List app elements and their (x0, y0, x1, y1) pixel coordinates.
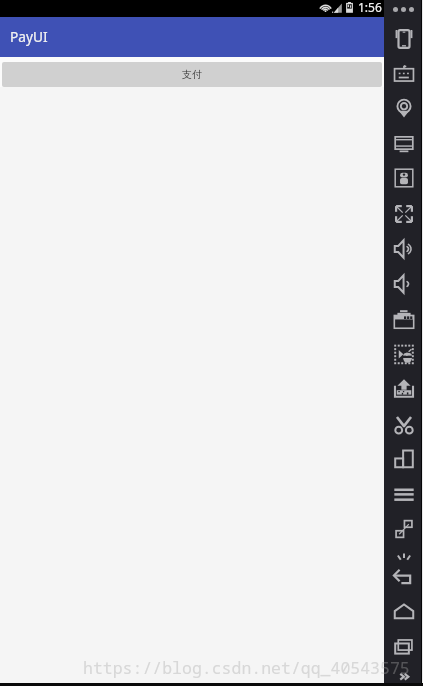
button[interactable]: Location (393, 97, 415, 119)
staticText: 支付 (182, 68, 202, 81)
button[interactable]: Display (393, 132, 415, 154)
staticText: PayUI (10, 27, 48, 46)
button[interactable]: Record (393, 343, 415, 365)
button[interactable]: Keyboard (393, 63, 415, 85)
button[interactable]: Expand panel (398, 671, 412, 682)
button[interactable]: Rotate (393, 28, 415, 50)
button[interactable]: More options (393, 4, 414, 15)
staticText: https://blog.csdn.net/qq_40543575 (83, 656, 410, 678)
button[interactable]: Back (393, 565, 415, 587)
button[interactable]: Recents (393, 636, 415, 658)
button[interactable]: PayUI (0, 17, 384, 57)
button[interactable]: Home (393, 601, 415, 623)
button[interactable]: Fingerprint (393, 167, 415, 189)
button[interactable]: Snapshot (393, 413, 415, 435)
button[interactable]: Power (395, 553, 413, 563)
button[interactable]: Volume up (393, 238, 415, 260)
button[interactable]: Resize (393, 518, 415, 540)
button[interactable]: 支付 (2, 62, 382, 87)
button[interactable]: Menu (393, 483, 415, 505)
staticText: 1:56 (358, 0, 382, 15)
button[interactable]: Volume down (393, 273, 415, 295)
button[interactable]: Install APK (393, 377, 415, 399)
button[interactable]: Zoom (393, 203, 415, 225)
button[interactable]: Camera (393, 308, 415, 330)
button[interactable]: Stats (393, 447, 415, 469)
